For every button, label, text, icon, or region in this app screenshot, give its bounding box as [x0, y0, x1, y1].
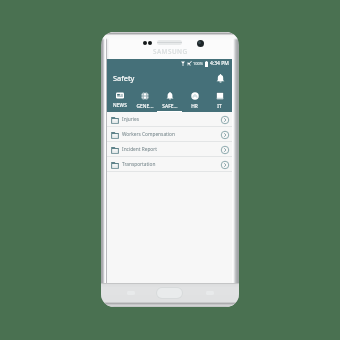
staticText: HR — [191, 103, 198, 110]
staticText: 4:34 PM — [210, 60, 229, 67]
button[interactable]: Notifications — [214, 72, 227, 85]
staticText: Injuries — [122, 116, 140, 123]
button[interactable]: Transportation — [107, 157, 232, 172]
button[interactable]: HR — [182, 88, 207, 112]
staticText: Safety — [113, 73, 135, 83]
button[interactable]: GENE... — [132, 88, 157, 112]
staticText: Workers Compensation — [122, 131, 175, 138]
staticText: NEWS — [113, 102, 127, 109]
staticText: Incident Report — [122, 146, 157, 153]
staticText: GENE... — [136, 103, 154, 110]
staticText: 100% — [193, 61, 204, 66]
button[interactable]: Workers Compensation — [107, 127, 232, 142]
button[interactable]: IT — [207, 88, 232, 112]
staticText: SAMSUNG — [153, 47, 188, 56]
button[interactable]: NEWS — [107, 88, 132, 112]
button[interactable]: SAFE... — [157, 88, 182, 112]
staticText: Transportation — [122, 161, 156, 168]
button[interactable]: Injuries — [107, 112, 232, 127]
staticText: SAFE... — [162, 103, 178, 110]
button[interactable]: Home — [156, 287, 183, 299]
button[interactable]: Incident Report — [107, 142, 232, 157]
staticText: IT — [217, 103, 222, 110]
